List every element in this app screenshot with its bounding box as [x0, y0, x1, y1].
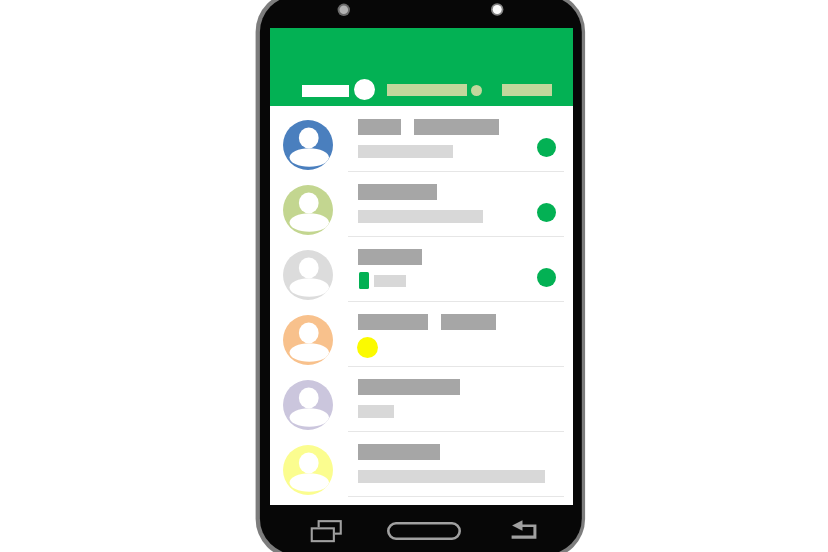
button[interactable] — [270, 366, 573, 433]
button[interactable]: Profile — [354, 79, 375, 100]
button[interactable] — [270, 236, 573, 303]
button[interactable] — [270, 171, 573, 238]
button[interactable] — [270, 106, 573, 172]
button[interactable]: Home — [387, 522, 461, 540]
button[interactable]: Back — [510, 518, 540, 542]
button[interactable] — [270, 301, 573, 368]
button[interactable]: Recents — [308, 516, 346, 546]
button[interactable] — [270, 431, 573, 498]
